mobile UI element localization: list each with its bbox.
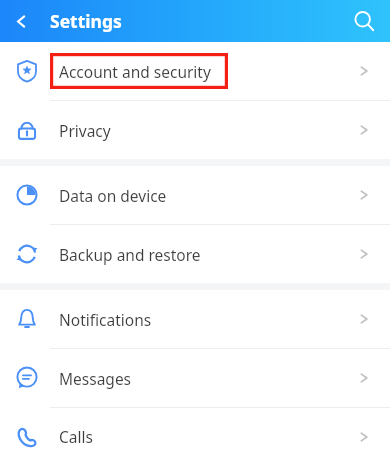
- button[interactable]: Calls: [0, 408, 390, 465]
- button[interactable]: Back: [0, 0, 42, 42]
- staticText: Messages: [59, 368, 132, 389]
- button[interactable]: Privacy: [0, 101, 390, 159]
- staticText: Backup and restore: [59, 244, 201, 265]
- button[interactable]: Notifications: [0, 290, 390, 348]
- staticText: Settings: [50, 9, 122, 33]
- button[interactable]: Data on device: [0, 166, 390, 224]
- button[interactable]: Account and security: [0, 42, 390, 100]
- button[interactable]: Search: [344, 1, 384, 41]
- staticText: Privacy: [59, 120, 111, 141]
- staticText: Account and security: [59, 61, 211, 82]
- staticText: Data on device: [59, 185, 167, 206]
- staticText: Notifications: [59, 309, 152, 330]
- button[interactable]: Backup and restore: [0, 225, 390, 283]
- staticText: Calls: [59, 426, 93, 447]
- button[interactable]: Messages: [0, 349, 390, 407]
